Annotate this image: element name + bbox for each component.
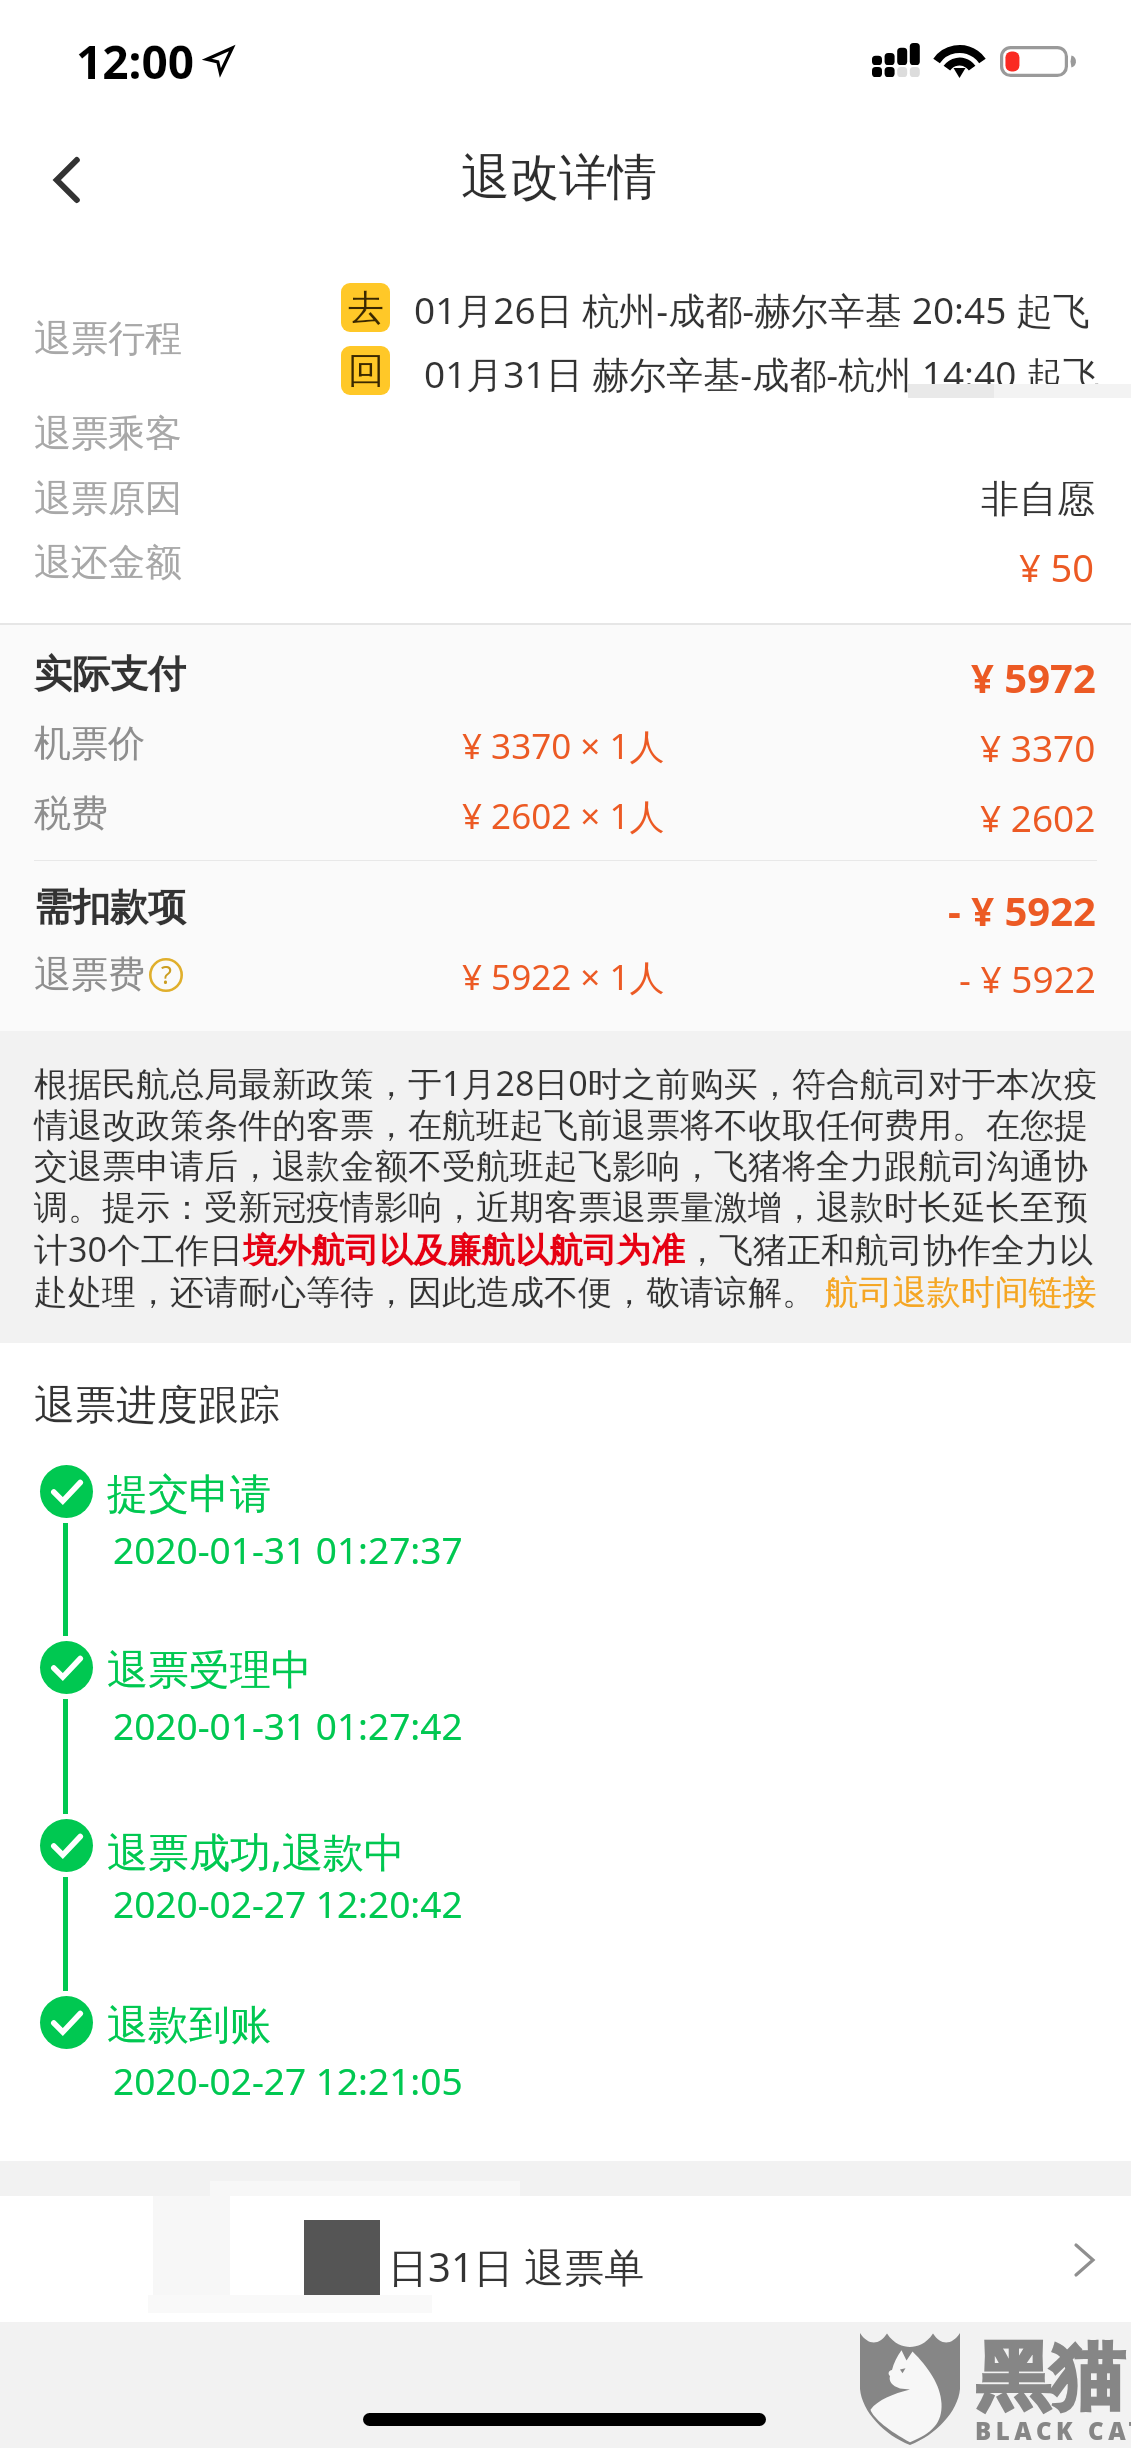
staticText: 退票乘客 bbox=[34, 410, 182, 457]
staticText: 2020-02-27 12:20:42 bbox=[113, 1878, 463, 1928]
staticText: 实际支付 bbox=[34, 650, 186, 698]
staticText: ¥ 5922 × 1人 bbox=[462, 953, 665, 1001]
staticText: 退票行程 bbox=[34, 315, 182, 362]
staticText: 根据民航总局最新政策，于1月28日0时之前购买，符合航司对于本次疫情退改政策条件… bbox=[34, 1060, 1100, 1314]
staticText: 退票受理中 bbox=[107, 1645, 312, 1697]
staticText: ¥ 2602 × 1人 bbox=[462, 792, 665, 840]
staticText: 2020-01-31 01:27:37 bbox=[113, 1524, 463, 1574]
staticText: 2020-01-31 01:27:42 bbox=[113, 1700, 463, 1750]
button[interactable]: 航司退款时间链接 bbox=[822, 1273, 1098, 1317]
staticText: ¥ 5972 bbox=[971, 650, 1096, 704]
staticText: 01月31日 赫尔辛基-成都-杭州 14:40 起飞 bbox=[424, 348, 1100, 399]
staticText: 退还金额 bbox=[34, 539, 182, 586]
staticText: ? bbox=[161, 957, 172, 991]
staticText: BLACK CAT bbox=[975, 2414, 1131, 2447]
staticText: 01月26日 杭州-成都-赫尔辛基 20:45 起飞 bbox=[414, 284, 1090, 335]
staticText: 提交申请 bbox=[107, 1469, 271, 1521]
staticText: ¥ 3370 bbox=[980, 722, 1096, 772]
staticText: - ¥ 5922 bbox=[959, 953, 1096, 1003]
staticText: 退票进度跟踪 bbox=[34, 1380, 280, 1432]
staticText: 2020-02-27 12:21:05 bbox=[113, 2055, 463, 2105]
staticText: 去 bbox=[348, 285, 384, 330]
staticText: 回 bbox=[348, 348, 384, 393]
staticText: 退款到账 bbox=[107, 2000, 271, 2052]
staticText: 需扣款项 bbox=[34, 883, 186, 931]
staticText: ¥ 2602 bbox=[980, 792, 1096, 842]
staticText: 黑猫 bbox=[976, 2331, 1124, 2424]
staticText: 机票价 bbox=[34, 720, 145, 767]
staticText: 退票费 bbox=[34, 951, 145, 998]
staticText: 退票成功,退款中 bbox=[107, 1823, 405, 1879]
staticText: 12:00 bbox=[76, 30, 195, 93]
staticText: 非自愿 bbox=[981, 475, 1095, 523]
staticText: 日31日 退票单 bbox=[388, 2239, 645, 2294]
button[interactable]: 退票单详情 bbox=[0, 2196, 1131, 2322]
staticText: - ¥ 5922 bbox=[948, 883, 1096, 937]
staticText: 退改详情 bbox=[461, 147, 657, 209]
staticText: 退票原因 bbox=[34, 475, 182, 522]
staticText: ¥ 50 bbox=[1019, 541, 1095, 593]
button[interactable]: 退票费说明 bbox=[149, 958, 183, 992]
staticText: 税费 bbox=[34, 790, 108, 837]
button[interactable]: Back bbox=[20, 135, 110, 225]
staticText: ¥ 3370 × 1人 bbox=[462, 722, 665, 770]
